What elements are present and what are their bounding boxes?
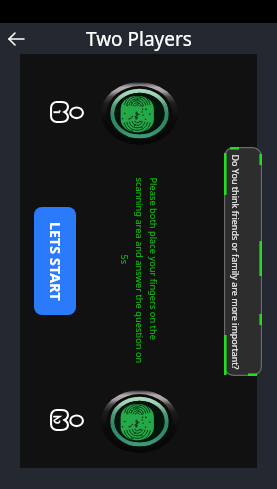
button[interactable]: Fingerprint scanner — [101, 390, 178, 453]
button[interactable]: Back — [0, 23, 32, 54]
staticText: Do You think friends or family are more … — [230, 154, 242, 370]
button[interactable]: Do You think friends or family are more … — [224, 147, 262, 376]
staticText: LETS START — [46, 222, 65, 301]
staticText: Two Players — [86, 26, 192, 52]
staticText: Please both place your fingers on the sc… — [132, 177, 159, 367]
button[interactable]: Fingerprint scanner — [101, 82, 178, 145]
staticText: 5s — [117, 254, 130, 264]
button[interactable]: LETS START — [34, 207, 76, 315]
